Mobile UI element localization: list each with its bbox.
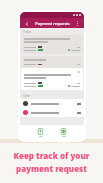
button[interactable] [21,35,83,54]
staticText: Payment requests [35,21,70,26]
button[interactable] [21,56,83,68]
staticText: Keep track of your [13,150,90,161]
staticText: Today [23,30,31,34]
button[interactable] [20,99,84,108]
button[interactable]: Back [23,20,30,27]
button[interactable]: Share [35,127,46,138]
button[interactable]: Save [58,127,69,138]
button[interactable]: More options [74,20,81,27]
staticText: payment request [16,163,87,174]
button[interactable] [21,68,83,90]
button[interactable] [20,108,84,117]
staticText: Older [23,94,31,98]
